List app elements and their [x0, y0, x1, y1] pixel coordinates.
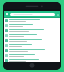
- button[interactable]: [4, 38, 60, 43]
- button[interactable]: [4, 43, 60, 48]
- button[interactable]: [4, 23, 60, 28]
- button[interactable]: More options: [56, 13, 59, 16]
- button[interactable]: [10, 13, 55, 16]
- button[interactable]: [4, 33, 60, 38]
- button[interactable]: [4, 58, 60, 62]
- button[interactable]: Menu: [5, 12, 9, 16]
- button[interactable]: [4, 18, 60, 23]
- button[interactable]: [4, 28, 60, 33]
- button[interactable]: [4, 48, 60, 53]
- button[interactable]: [4, 53, 60, 58]
